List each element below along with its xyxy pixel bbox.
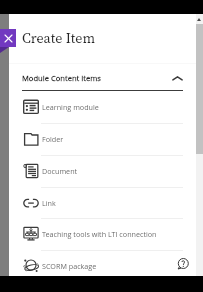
button[interactable]: Link — [9, 187, 183, 219]
button[interactable]: Learning module — [9, 91, 183, 123]
staticText: Create Item — [22, 28, 96, 47]
button[interactable]: Folder — [9, 123, 183, 155]
button[interactable]: Close panel — [0, 29, 16, 47]
button[interactable]: Help — [175, 256, 191, 272]
staticText: Module Content Items — [22, 73, 101, 83]
staticText: Learning module — [42, 102, 99, 112]
staticText: Link — [42, 198, 56, 208]
button[interactable]: Module Content Items — [22, 66, 183, 90]
button[interactable]: Teaching tools with LTI connection — [9, 218, 183, 250]
staticText: Folder — [42, 134, 64, 144]
staticText: SCORM package — [42, 261, 97, 271]
button[interactable]: SCORM package — [9, 250, 183, 276]
button[interactable]: Document — [9, 155, 183, 187]
staticText: Document — [42, 166, 78, 176]
staticText: Teaching tools with LTI connection — [42, 229, 157, 239]
